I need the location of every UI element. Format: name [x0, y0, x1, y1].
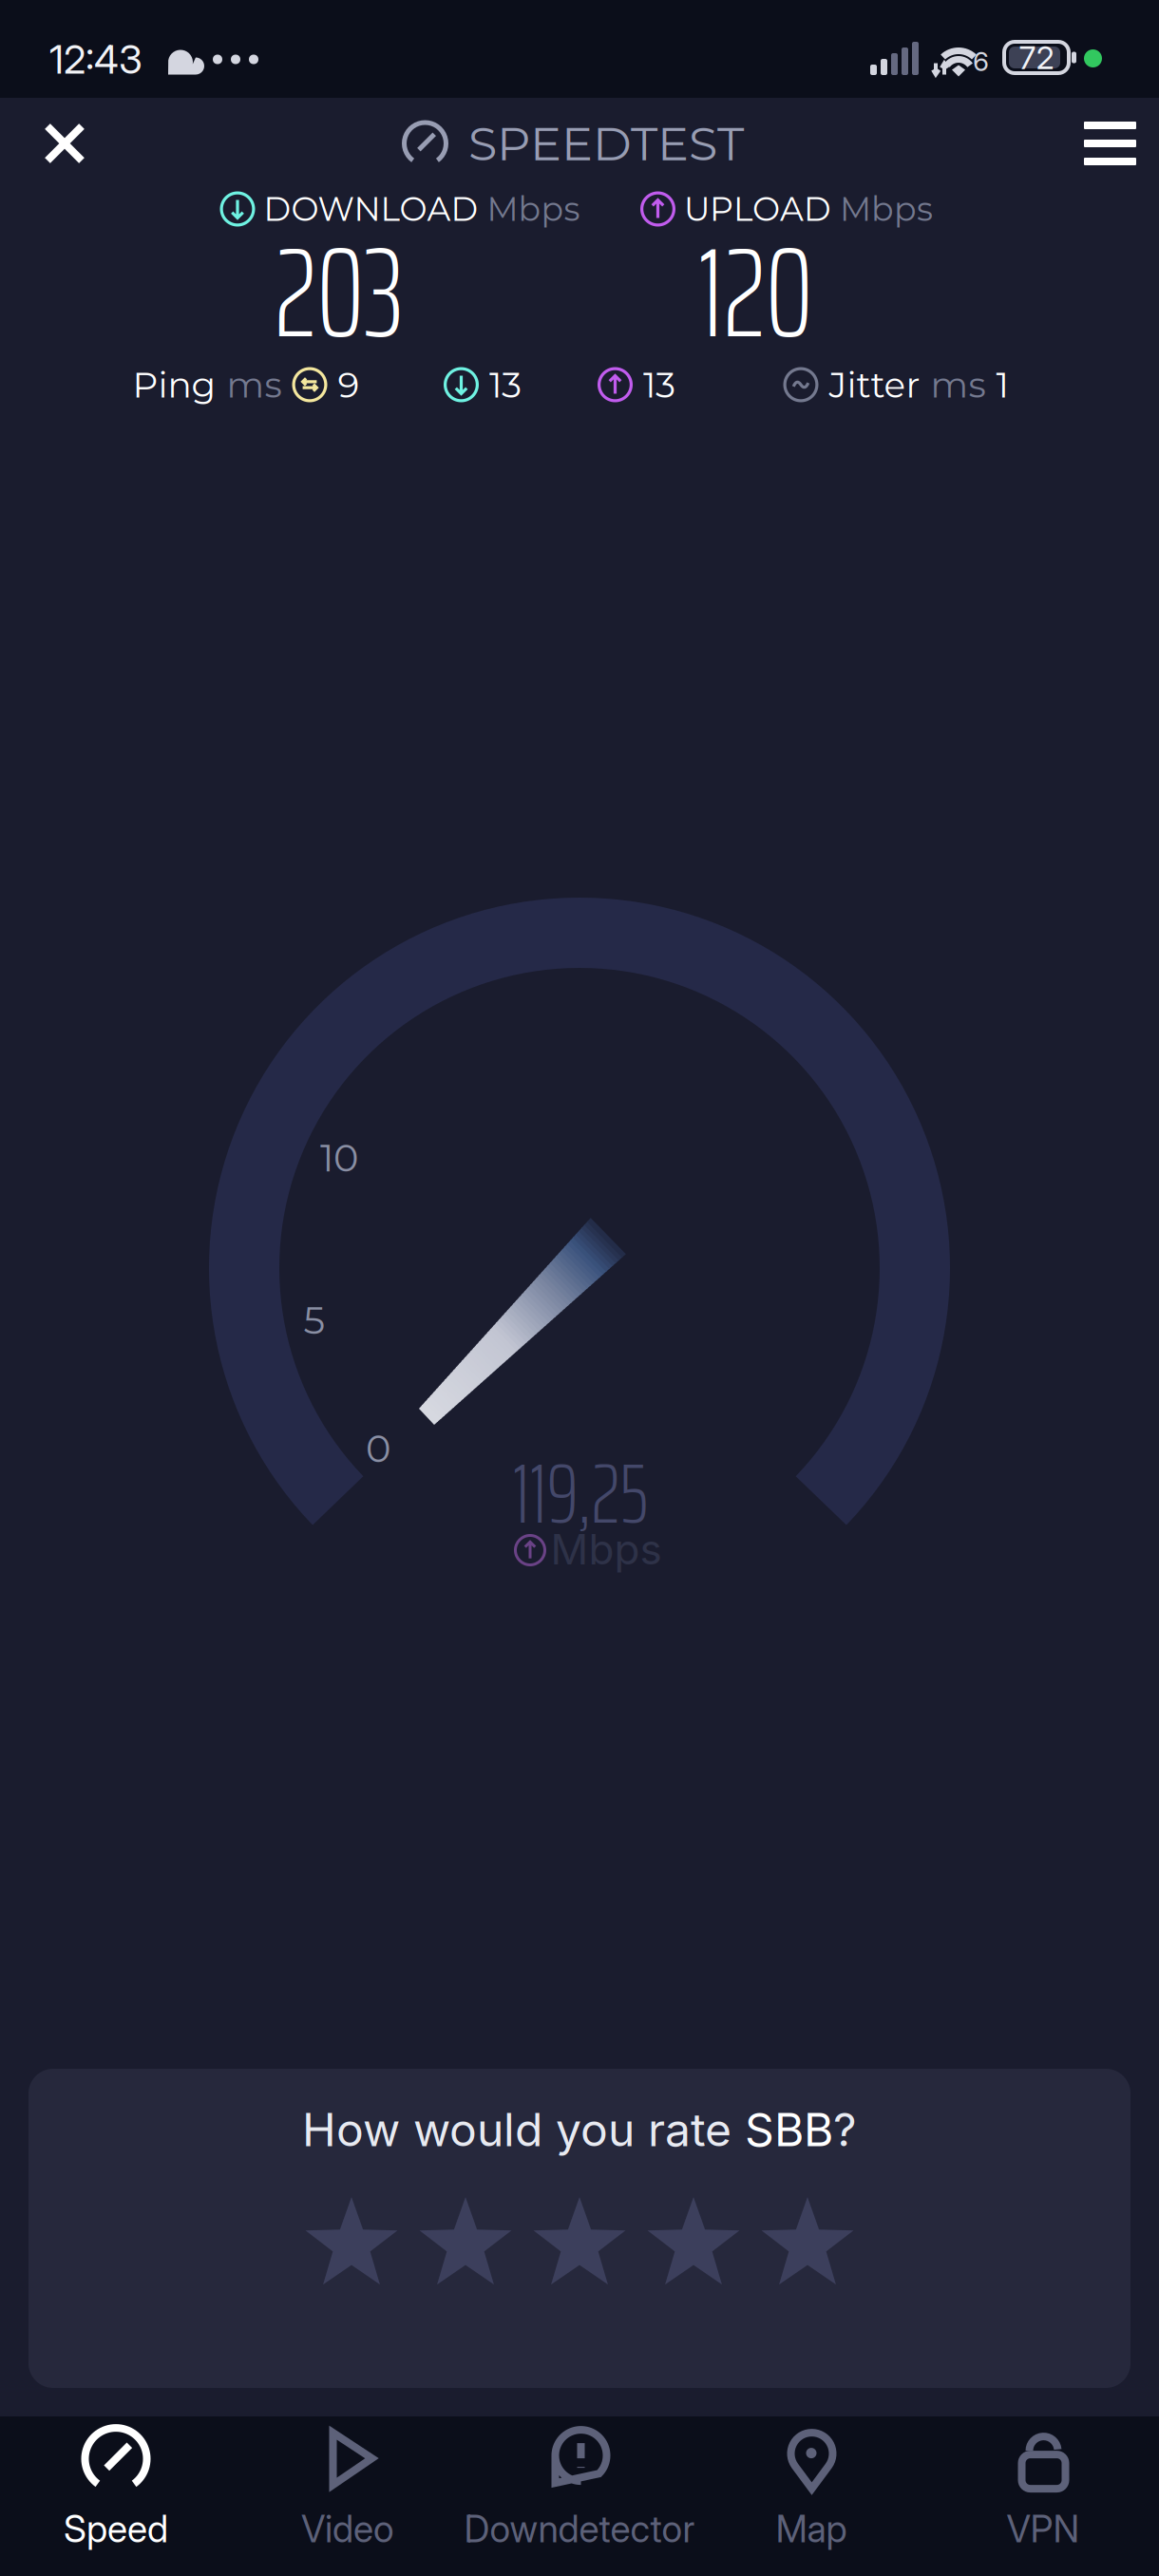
staticText: Mbps [487, 189, 580, 229]
staticText: 6 [973, 45, 989, 77]
staticText: 5 [304, 1297, 325, 1343]
staticText: VPN [1007, 2507, 1080, 2551]
staticText: 120 [698, 194, 813, 391]
staticText: 13 [489, 363, 522, 406]
button[interactable]: Close [17, 97, 112, 180]
staticText: 10 [320, 1135, 358, 1181]
staticText: 72 [1019, 38, 1054, 77]
staticText: Video [301, 2507, 394, 2551]
staticText: 1 [996, 363, 1008, 406]
button[interactable]: Speed [0, 2403, 232, 2576]
staticText: Mbps [551, 1524, 662, 1574]
staticText: Jitter [829, 363, 920, 406]
staticText: Map [776, 2507, 847, 2551]
staticText: 12:43 [49, 36, 142, 83]
button[interactable]: VPN [927, 2403, 1159, 2576]
staticText: SBB [745, 2102, 833, 2157]
staticText: Mbps [840, 189, 933, 229]
staticText: UPLOAD [684, 189, 831, 229]
staticText: 119,25 [513, 1426, 648, 1560]
staticText: DOWNLOAD [264, 189, 478, 229]
staticText: How would you rate [302, 2102, 745, 2157]
staticText: 0 [366, 1425, 390, 1472]
staticText: Downdetector [464, 2507, 695, 2551]
button[interactable]: Video [232, 2403, 464, 2576]
staticText: ? [833, 2102, 857, 2157]
staticText: 9 [338, 363, 360, 406]
staticText: Speed [64, 2507, 168, 2551]
button[interactable]: Downdetector [464, 2403, 695, 2576]
button[interactable]: Map [695, 2403, 927, 2576]
staticText: SPEEDTEST [468, 115, 744, 172]
button[interactable]: Menu [1061, 97, 1159, 180]
staticText: 203 [275, 194, 404, 391]
staticText: 13 [643, 363, 675, 406]
staticText: Ping [133, 363, 216, 406]
staticText: ms [227, 363, 282, 406]
staticText: ms [931, 363, 986, 406]
